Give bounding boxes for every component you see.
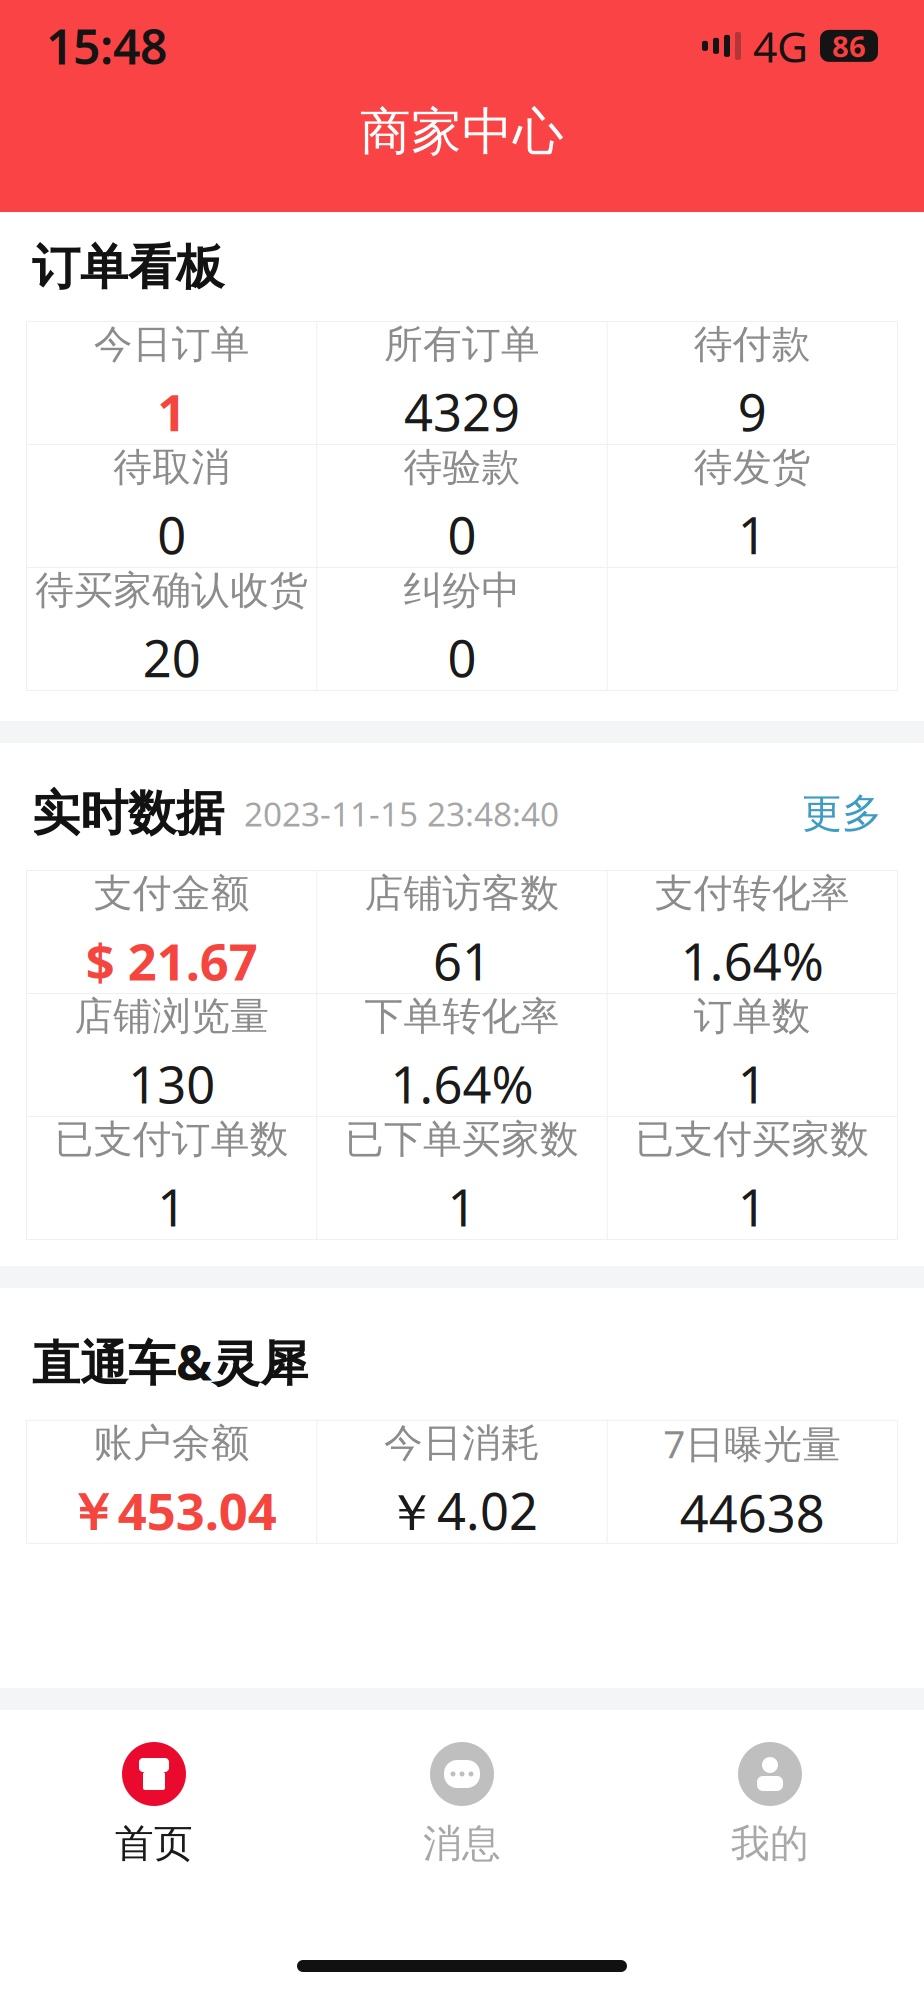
staticText: 支付转化率 (655, 870, 850, 917)
staticText: 20 (143, 624, 201, 691)
staticText: 今日订单 (94, 321, 250, 368)
staticText: 已支付订单数 (55, 1116, 289, 1163)
staticText: 1 (738, 1050, 767, 1117)
staticText: 店铺访客数 (364, 870, 559, 917)
staticText: 1 (447, 1173, 476, 1240)
staticText: 账户余额 (94, 1419, 250, 1467)
staticText: 9 (738, 378, 767, 445)
staticText: 今日消耗 (384, 1419, 540, 1467)
staticText: 待发货 (694, 444, 811, 491)
button[interactable]: 更多 (792, 781, 892, 846)
staticText: 0 (157, 501, 186, 568)
staticText: 2023-11-15 23:48:40 (244, 791, 559, 836)
staticText: 商家中心 (360, 101, 564, 163)
staticText: 4G (753, 18, 808, 74)
staticText: 更多 (802, 789, 882, 838)
button[interactable]: 消息 (308, 1736, 616, 1873)
staticText: 1.64% (681, 927, 824, 994)
staticText: 7日曝光量 (663, 1417, 841, 1469)
staticText: 店铺浏览量 (74, 993, 269, 1040)
staticText: 待买家确认收货 (35, 567, 308, 614)
staticText: 1 (157, 378, 186, 445)
staticText: 0 (447, 501, 476, 568)
staticText: 订单看板 (32, 238, 224, 297)
staticText: 已下单买家数 (345, 1116, 579, 1163)
staticText: 1 (738, 501, 767, 568)
staticText: 已支付买家数 (635, 1116, 869, 1163)
staticText: 61 (433, 927, 491, 994)
staticText: 首页 (115, 1820, 193, 1867)
staticText: 待付款 (694, 321, 811, 368)
staticText: 直通车&灵犀 (32, 1330, 308, 1394)
staticText: 实时数据 (32, 784, 224, 843)
staticText: 消息 (423, 1820, 501, 1867)
staticText: 所有订单 (384, 321, 540, 368)
staticText: ￥4.02 (386, 1477, 538, 1544)
staticText: ￥453.04 (67, 1477, 277, 1544)
staticText: 待验款 (403, 444, 520, 491)
staticText: $ 21.67 (86, 927, 258, 994)
staticText: 15:48 (46, 14, 167, 78)
staticText: 1.64% (390, 1050, 533, 1117)
button[interactable]: 我的 (616, 1736, 924, 1873)
staticText: 1 (157, 1173, 186, 1240)
staticText: 4329 (404, 378, 520, 445)
staticText: 支付金额 (94, 870, 250, 917)
staticText: 纠纷中 (403, 567, 520, 614)
staticText: 1 (738, 1173, 767, 1240)
staticText: 我的 (731, 1820, 809, 1867)
staticText: 0 (447, 624, 476, 691)
staticText: 86 (832, 26, 866, 65)
staticText: 44638 (680, 1479, 825, 1546)
staticText: 下单转化率 (364, 993, 559, 1040)
staticText: 待取消 (113, 444, 230, 491)
staticText: 订单数 (694, 993, 811, 1040)
staticText: 130 (128, 1050, 215, 1117)
button[interactable]: 首页 (0, 1736, 308, 1873)
